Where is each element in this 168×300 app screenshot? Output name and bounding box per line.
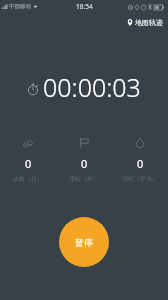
staticText: 00:00:03: [43, 70, 141, 104]
staticText: 0: [137, 156, 144, 171]
staticText: 消耗（千卡）: [122, 175, 158, 183]
staticText: 地图轨迹: [135, 18, 163, 27]
button[interactable]: 地图轨迹 Map track: [119, 13, 168, 32]
staticText: 步数（步）: [13, 175, 43, 183]
staticText: 18:54: [76, 2, 93, 11]
button[interactable]: 暂停 Pause: [59, 217, 109, 267]
staticText: 0: [25, 156, 32, 171]
staticText: 0: [81, 156, 88, 171]
staticText: 里程（米）: [69, 175, 99, 183]
staticText: 暂停: [75, 237, 93, 248]
staticText: 中国移动: [9, 3, 31, 10]
